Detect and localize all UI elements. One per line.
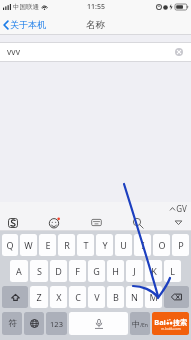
staticText: G xyxy=(93,265,100,277)
button[interactable]: GV xyxy=(170,203,187,214)
staticText: E xyxy=(45,239,51,251)
button[interactable]: F xyxy=(69,260,86,282)
staticText: D xyxy=(55,265,62,277)
button[interactable]: Hide keyboard xyxy=(172,216,185,229)
button[interactable]: Switch language xyxy=(24,312,44,335)
staticText: A xyxy=(16,265,22,277)
button[interactable]: P xyxy=(172,234,189,256)
staticText: W xyxy=(24,239,33,251)
staticText: Z xyxy=(36,291,42,303)
button[interactable]: K xyxy=(145,260,162,282)
button[interactable]: O xyxy=(153,234,170,256)
staticText: H xyxy=(112,265,119,277)
button[interactable]: A xyxy=(10,260,28,282)
button[interactable]: E xyxy=(39,234,56,256)
button[interactable]: 符 xyxy=(2,312,22,335)
staticText: S xyxy=(37,265,42,277)
staticText: GV xyxy=(176,203,187,214)
staticText: R xyxy=(64,239,70,251)
staticText: 中 xyxy=(132,319,140,329)
staticText: Q xyxy=(6,239,14,251)
staticText: B xyxy=(113,291,119,303)
button[interactable]: S xyxy=(30,260,48,282)
staticText: 名称 xyxy=(86,19,105,31)
button[interactable]: Search xyxy=(131,216,144,229)
button[interactable]: Baidu search xyxy=(152,312,189,335)
staticText: J xyxy=(133,265,136,277)
staticText: Bai xyxy=(154,317,166,327)
button[interactable]: R xyxy=(58,234,75,256)
button[interactable]: G xyxy=(88,260,105,282)
staticText: C xyxy=(75,291,81,303)
button[interactable]: 关于本机 xyxy=(0,16,52,33)
staticText: 搜索 xyxy=(173,318,187,327)
button[interactable]: V xyxy=(88,286,105,308)
button[interactable]: Q xyxy=(2,234,18,256)
button[interactable]: 中 xyxy=(130,312,150,335)
staticText: F xyxy=(75,265,80,277)
button[interactable]: X xyxy=(50,286,67,308)
button[interactable]: W xyxy=(20,234,37,256)
staticText: /En xyxy=(140,322,148,329)
button[interactable]: Input method logo xyxy=(6,216,20,230)
staticText: I xyxy=(141,239,145,251)
button[interactable]: Backspace xyxy=(164,286,189,308)
staticText: K xyxy=(151,265,157,277)
button[interactable]: U xyxy=(115,234,132,256)
staticText: X xyxy=(56,291,62,303)
button[interactable]: J xyxy=(126,260,143,282)
staticText: Y xyxy=(102,239,108,251)
staticText: 关于本机 xyxy=(10,19,46,30)
button[interactable]: L xyxy=(164,260,181,282)
staticText: m.baidu.com xyxy=(161,327,181,331)
staticText: U xyxy=(120,239,127,251)
staticText: P xyxy=(178,239,184,251)
button[interactable]: Space xyxy=(69,312,128,335)
button[interactable]: Y xyxy=(96,234,113,256)
staticText: T xyxy=(83,239,89,251)
button[interactable]: D xyxy=(50,260,67,282)
button[interactable]: Keyboard layout xyxy=(90,216,103,229)
button[interactable]: B xyxy=(107,286,124,308)
button[interactable]: C xyxy=(69,286,86,308)
staticText: M xyxy=(149,291,158,303)
button[interactable]: T xyxy=(77,234,94,256)
staticText: 123 xyxy=(50,319,63,329)
staticText: L xyxy=(170,265,175,277)
button[interactable]: I xyxy=(134,234,151,256)
button[interactable]: N xyxy=(126,286,143,308)
staticText: 符 xyxy=(8,318,17,329)
button[interactable]: Shift xyxy=(2,286,28,308)
staticText: vvv xyxy=(7,46,20,58)
button[interactable]: H xyxy=(107,260,124,282)
staticText: V xyxy=(94,291,100,303)
staticText: O xyxy=(158,239,166,251)
staticText: 11:55 xyxy=(87,2,105,12)
button[interactable]: Clear text xyxy=(174,47,184,57)
button[interactable]: Emoji xyxy=(48,216,61,229)
button[interactable]: M xyxy=(145,286,162,308)
button[interactable]: Z xyxy=(30,286,48,308)
button[interactable]: 123 xyxy=(46,312,67,335)
staticText: N xyxy=(131,291,138,303)
staticText: 中国联通 xyxy=(13,3,39,11)
